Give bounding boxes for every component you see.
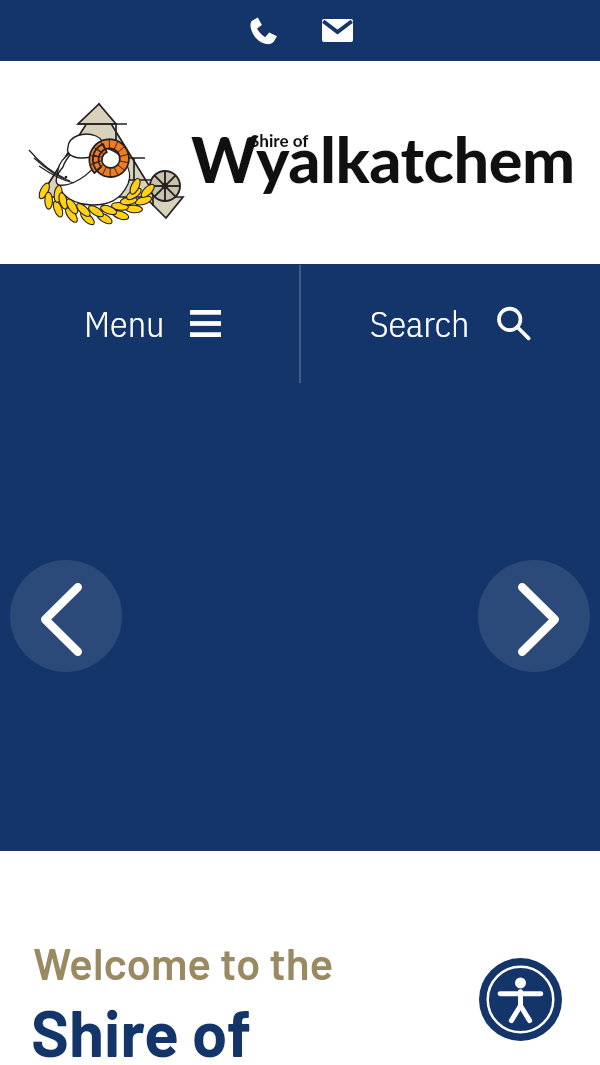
- button[interactable]: Call us: [226, 0, 300, 61]
- button[interactable]: Wyalkatchem: [0, 61, 600, 264]
- staticText: Shire of: [250, 130, 309, 150]
- button[interactable]: Search: [301, 264, 600, 383]
- button[interactable]: Previous slide: [10, 560, 122, 672]
- button[interactable]: Next slide: [478, 560, 590, 672]
- staticText: Menu: [84, 300, 165, 347]
- button[interactable]: Menu: [0, 264, 299, 383]
- staticText: Shire of: [31, 993, 252, 1065]
- button[interactable]: Accessibility options: [479, 958, 562, 1041]
- staticText: Welcome to the: [33, 936, 334, 989]
- button[interactable]: Email us: [300, 0, 374, 61]
- staticText: Wyalkatchem: [191, 121, 575, 197]
- staticText: Search: [370, 300, 470, 347]
